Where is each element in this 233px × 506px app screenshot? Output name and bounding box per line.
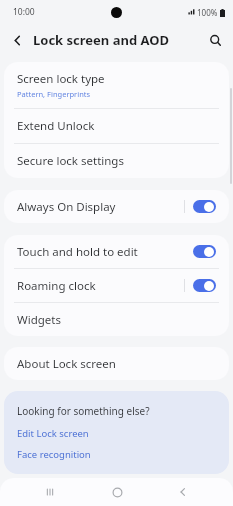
staticText: Secure lock settings xyxy=(17,153,124,169)
button[interactable]: Edit Lock screen xyxy=(17,427,89,440)
button[interactable]: Touch and hold to edit xyxy=(4,235,229,268)
staticText: Touch and hold to edit xyxy=(17,244,193,260)
staticText: Pattern, Fingerprints xyxy=(17,89,91,99)
button[interactable]: Home xyxy=(100,478,134,506)
button[interactable]: Toggle xyxy=(193,245,216,258)
staticText: 10:00 xyxy=(13,6,35,18)
staticText: Lock screen and AOD xyxy=(33,31,170,49)
button[interactable]: Face recognition xyxy=(17,448,91,461)
button[interactable]: Search xyxy=(202,27,228,53)
button[interactable]: Back xyxy=(166,478,200,506)
staticText: Screen lock type xyxy=(17,71,105,87)
button[interactable]: Screen lock type xyxy=(4,62,229,108)
button[interactable]: Toggle xyxy=(193,200,216,213)
staticText: 100% xyxy=(197,7,218,18)
staticText: Face recognition xyxy=(17,448,91,461)
staticText: Extend Unlock xyxy=(17,118,95,134)
staticText: Edit Lock screen xyxy=(17,427,89,440)
button[interactable]: Always On Display xyxy=(4,190,229,223)
button[interactable]: Toggle xyxy=(193,279,216,292)
button[interactable]: About Lock screen xyxy=(4,347,229,380)
button[interactable]: Navigate up xyxy=(4,27,30,53)
button[interactable]: Roaming clock xyxy=(4,269,229,302)
staticText: Always On Display xyxy=(17,199,184,215)
button[interactable]: Recent apps xyxy=(33,478,67,506)
button[interactable]: Widgets xyxy=(4,303,229,336)
button[interactable]: Extend Unlock xyxy=(4,109,229,143)
staticText: Looking for something else? xyxy=(17,404,150,418)
staticText: Widgets xyxy=(17,312,61,328)
staticText: Roaming clock xyxy=(17,278,184,294)
staticText: About Lock screen xyxy=(17,356,116,372)
button[interactable]: Secure lock settings xyxy=(4,144,229,178)
